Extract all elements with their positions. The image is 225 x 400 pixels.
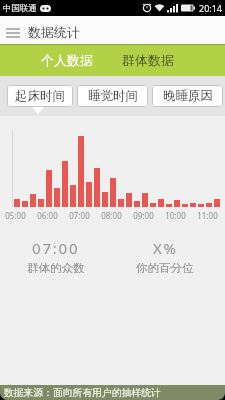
staticText: 群体数据 [122,52,174,68]
staticText: 数据统计 [28,24,80,40]
staticText: 10:00 [165,210,186,220]
staticText: 20:14 [199,2,223,14]
staticText: 数据来源：面向所有用户的抽样统计 [4,387,161,399]
staticText: 08:00 [101,210,122,220]
button[interactable]: 睡觉时间 [77,85,148,107]
staticText: 睡觉时间 [88,88,138,104]
button[interactable]: 数据来源：面向所有用户的抽样统计 [0,385,225,400]
button[interactable]: 起床时间 [7,85,73,107]
button[interactable]: 数据统计 [0,18,80,46]
staticText: X% [153,238,178,256]
staticText: 07:00 [32,238,80,256]
button[interactable]: 个人数据 [0,44,112,76]
staticText: 群体的众数 [27,261,85,273]
staticText: 起床时间 [15,88,65,104]
staticText: 你的百分位 [136,261,194,273]
staticText: 晚睡原因 [163,88,213,104]
staticText: 05:00 [5,210,26,220]
button[interactable]: 晚睡原因 [152,85,223,107]
staticText: 中国联通 [3,3,37,14]
staticText: 06:00 [37,210,58,220]
staticText: 个人数据 [41,52,93,68]
staticText: 09:00 [133,210,154,220]
staticText: 07:00 [69,210,90,220]
staticText: 11:00 [197,210,218,220]
button[interactable]: 群体数据 [112,44,225,76]
